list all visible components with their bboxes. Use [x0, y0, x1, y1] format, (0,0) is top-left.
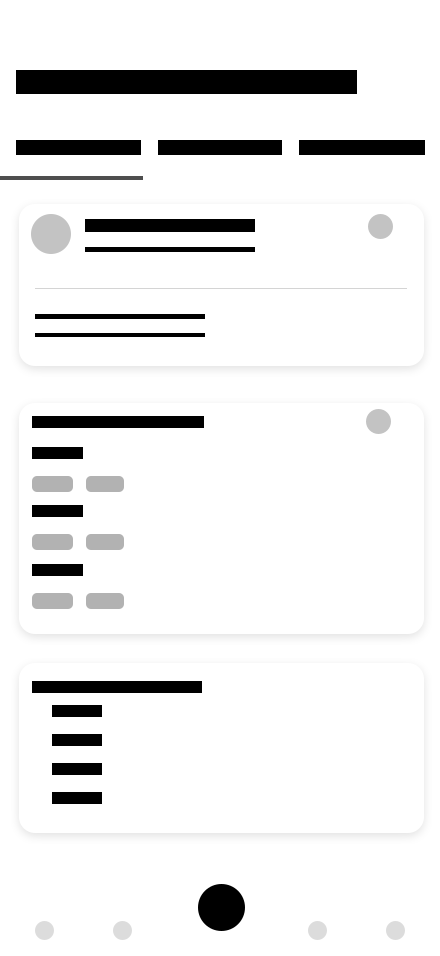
button[interactable]: Option	[32, 476, 73, 492]
button[interactable]: List item	[19, 792, 102, 804]
button[interactable]: Option	[86, 593, 124, 609]
button[interactable]: Option	[86, 534, 124, 550]
button[interactable]: Option	[32, 534, 73, 550]
button[interactable]: Search	[113, 921, 132, 940]
button[interactable]: Option	[86, 476, 124, 492]
button[interactable]	[19, 204, 424, 366]
button[interactable]: Create	[198, 884, 245, 931]
button[interactable]: List item	[19, 763, 102, 775]
button[interactable]: List item	[19, 734, 102, 746]
button[interactable]: Option	[32, 593, 73, 609]
button[interactable]: Home	[35, 921, 54, 940]
button[interactable]: List item	[19, 705, 102, 717]
button[interactable]: Profile	[386, 921, 405, 940]
button[interactable]: Alerts	[308, 921, 327, 940]
